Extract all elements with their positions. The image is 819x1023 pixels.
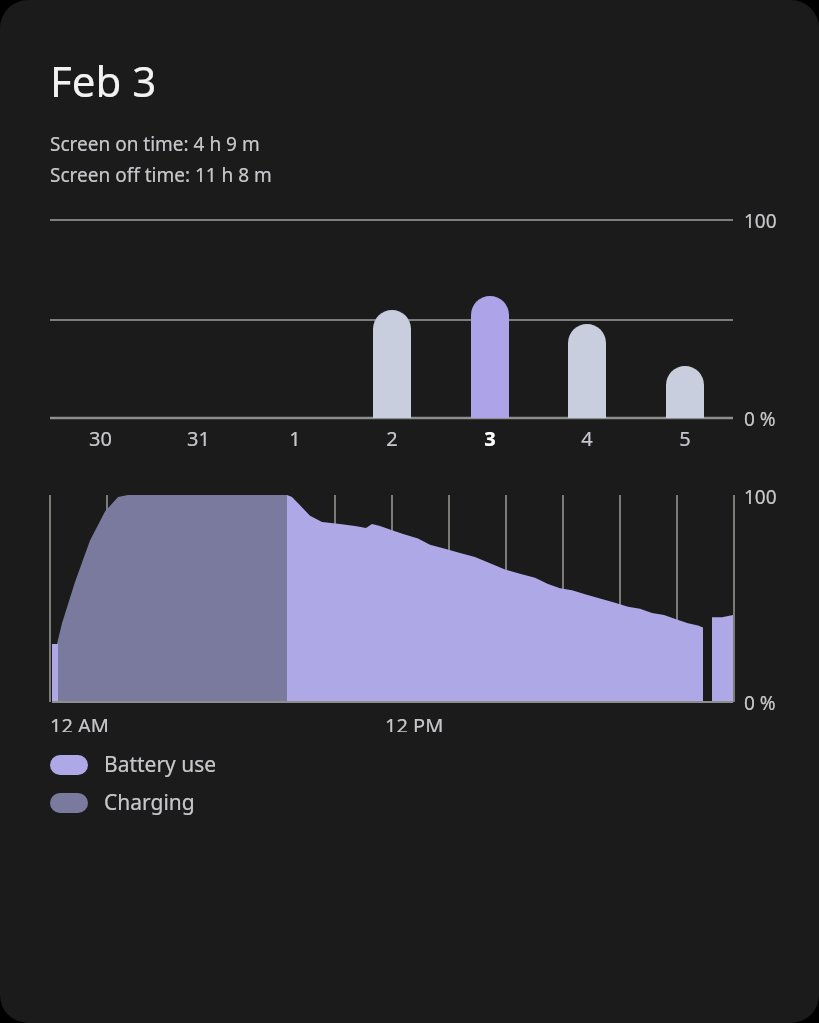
other: Battery use — [50, 755, 88, 775]
staticText: 3 — [484, 425, 496, 452]
staticText: Charging — [104, 788, 195, 817]
button[interactable]: Charging — [50, 788, 195, 817]
staticText: Battery use — [104, 750, 217, 779]
staticText: 2 — [386, 425, 398, 452]
staticText: 12 PM — [385, 712, 444, 732]
staticText: 4 — [581, 425, 593, 452]
staticText: Feb 3 — [50, 52, 157, 109]
staticText: 0 % — [744, 406, 776, 432]
staticText: 100 — [744, 484, 777, 510]
staticText: 5 — [679, 425, 691, 452]
button[interactable]: 100 — [0, 188, 819, 470]
staticText: 1 — [289, 425, 301, 452]
staticText: 0 % — [744, 690, 776, 716]
staticText: 12 AM — [50, 712, 109, 732]
staticText: 31 — [187, 425, 210, 452]
other: Charging — [50, 793, 88, 813]
staticText: Screen off time: 11 h 8 m — [50, 162, 272, 188]
button[interactable]: Battery use — [50, 750, 217, 779]
button[interactable]: 100 — [0, 470, 819, 732]
staticText: 30 — [89, 425, 112, 452]
staticText: Screen on time: 4 h 9 m — [50, 131, 260, 157]
staticText: 100 — [744, 208, 777, 234]
